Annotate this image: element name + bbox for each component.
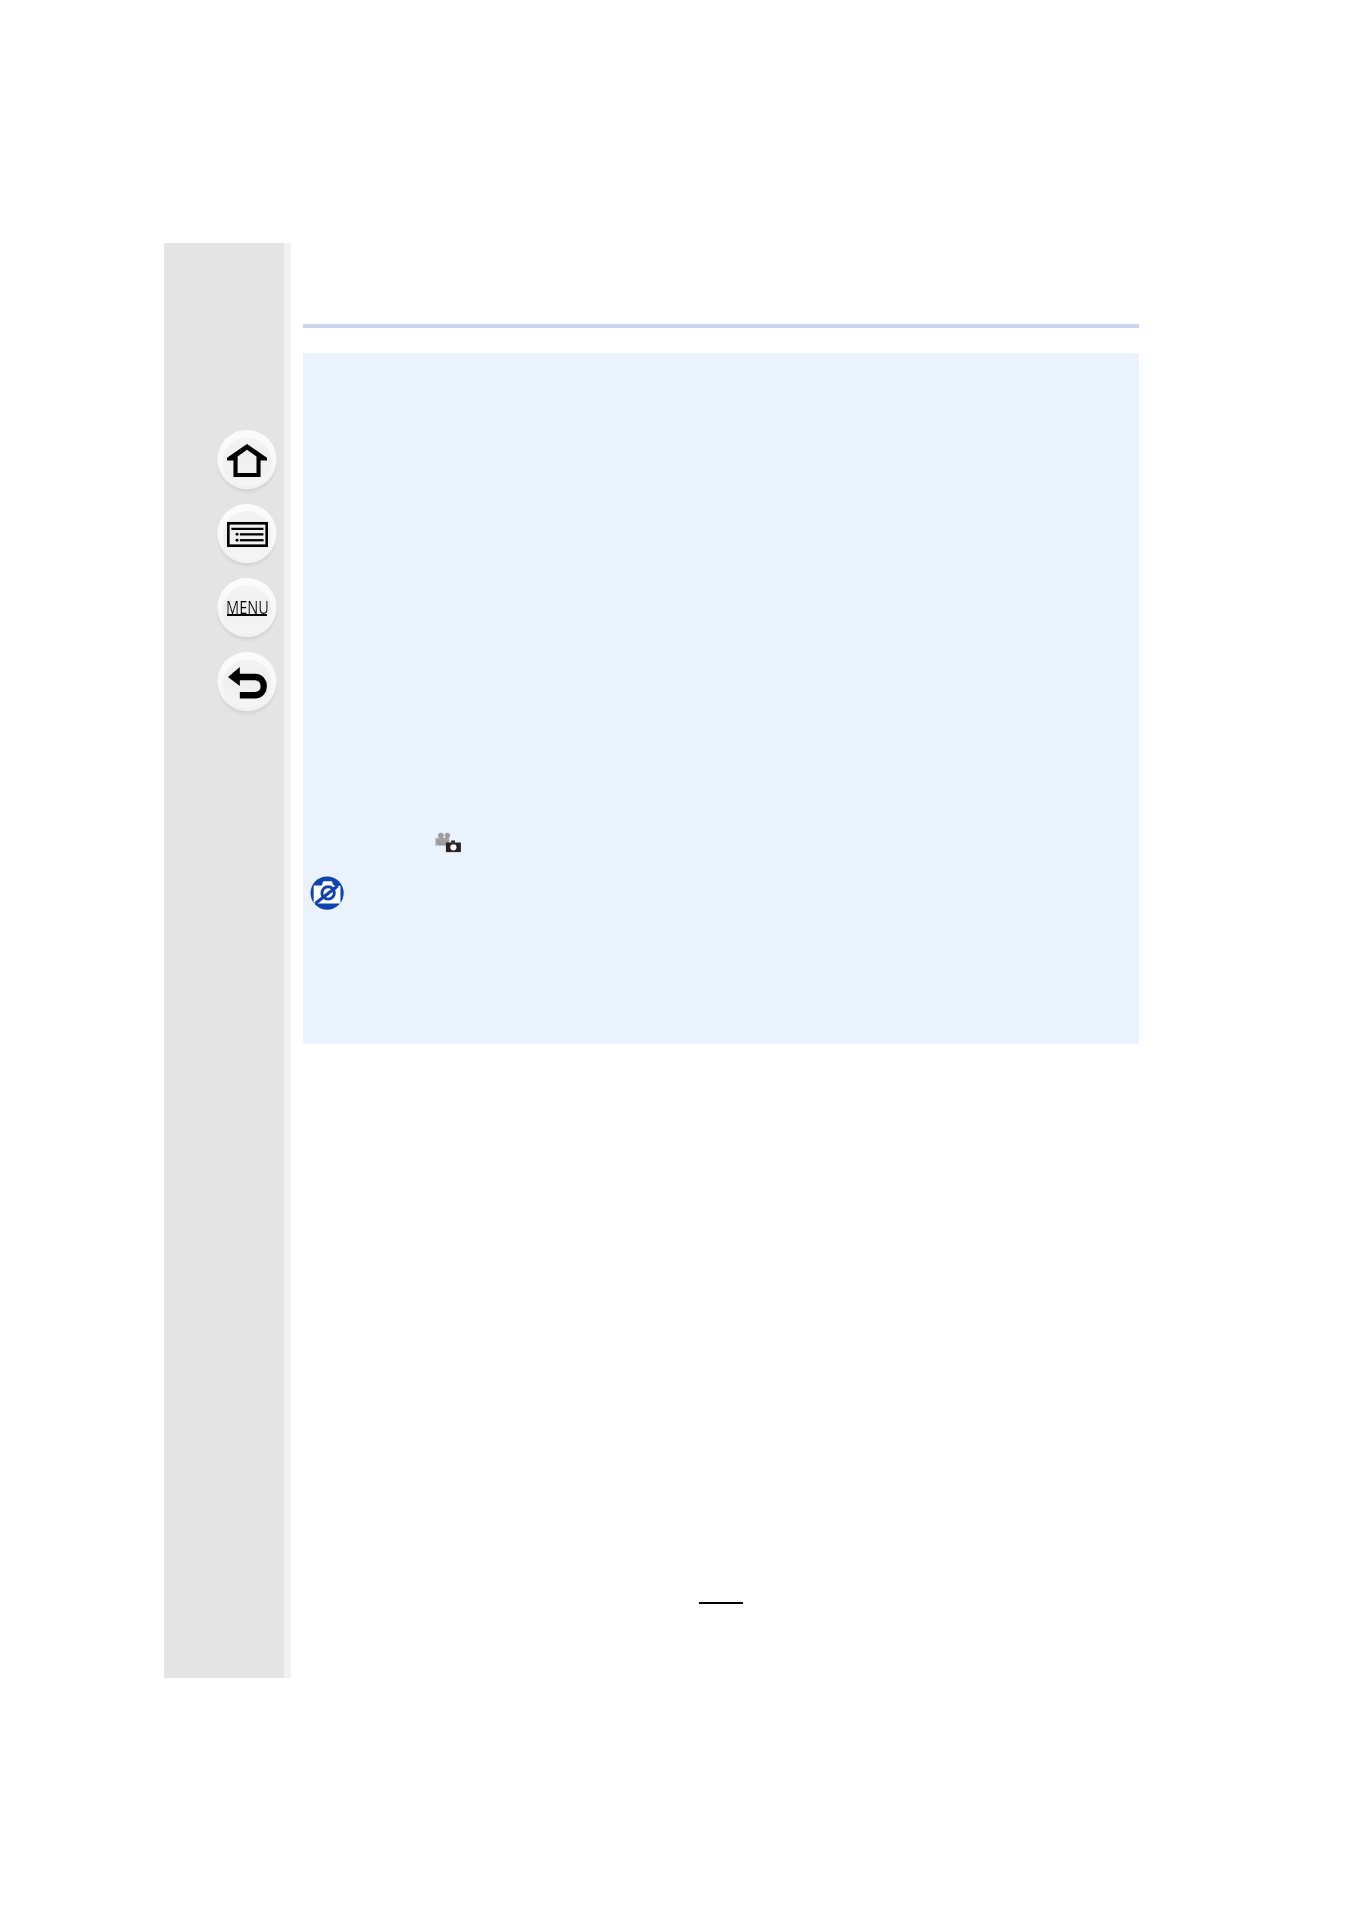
button[interactable]: Back	[216, 651, 278, 713]
button[interactable]: Menu	[216, 577, 278, 639]
other: Recording not available	[310, 876, 344, 910]
button[interactable]: Home	[216, 429, 278, 491]
staticText: MENU	[226, 596, 269, 619]
other: Photo and video recording	[435, 832, 461, 853]
button[interactable]: Table of contents	[216, 503, 278, 565]
